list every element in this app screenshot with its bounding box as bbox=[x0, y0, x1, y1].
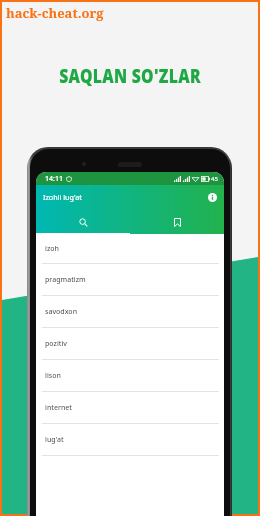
button[interactable]: lug'at bbox=[36, 424, 224, 456]
staticText: pozitiv bbox=[45, 339, 68, 349]
button[interactable]: pozitiv bbox=[36, 328, 224, 360]
button[interactable]: pragmatizm bbox=[36, 264, 224, 296]
staticText: Izohli lug'at bbox=[43, 192, 82, 202]
button[interactable]: savodxon bbox=[36, 296, 224, 328]
staticText: lug'at bbox=[45, 435, 64, 445]
staticText: 14:11 bbox=[45, 174, 63, 184]
staticText: lison bbox=[45, 371, 61, 381]
staticText: 45 bbox=[211, 175, 218, 183]
button[interactable]: Info bbox=[206, 191, 219, 204]
button[interactable]: internet bbox=[36, 392, 224, 424]
staticText: izoh bbox=[45, 244, 59, 254]
staticText: hack-cheat.org bbox=[6, 4, 104, 22]
staticText: savodxon bbox=[45, 307, 78, 317]
button[interactable]: lison bbox=[36, 360, 224, 392]
staticText: pragmatizm bbox=[45, 275, 86, 285]
staticText: internet bbox=[45, 403, 73, 413]
staticText: SAQLAN SO'ZLAR bbox=[29, 62, 230, 89]
button[interactable]: izoh bbox=[36, 234, 224, 264]
button[interactable]: Search bbox=[36, 209, 130, 234]
button[interactable]: Bookmarks bbox=[130, 209, 224, 234]
